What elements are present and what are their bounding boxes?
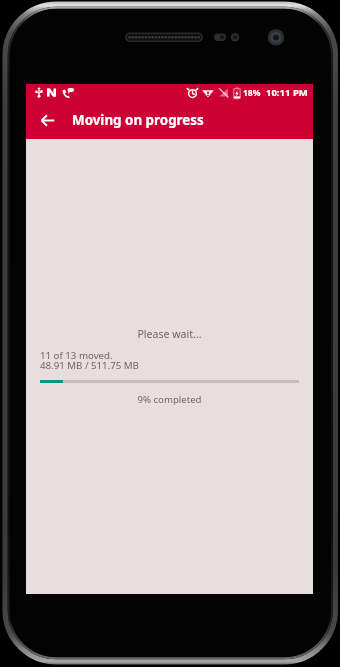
- staticText: 11 of 13 moved.: [40, 349, 113, 362]
- staticText: 10:11 PM: [266, 86, 308, 99]
- staticText: 48.91 MB / 511.75 MB: [40, 359, 139, 372]
- staticText: Please wait...: [26, 327, 313, 341]
- staticText: 9% completed: [26, 393, 313, 406]
- staticText: Moving on progress: [72, 111, 204, 129]
- other: Progress 9 percent: [40, 380, 299, 383]
- button[interactable]: Back: [33, 106, 61, 134]
- staticText: 18%: [243, 87, 261, 99]
